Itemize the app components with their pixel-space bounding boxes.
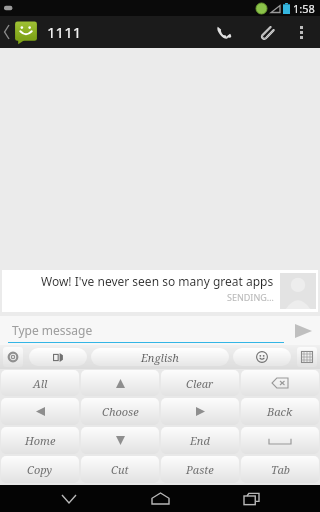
button[interactable]: Home: [134, 485, 186, 512]
button[interactable]: Type message: [8, 318, 284, 343]
button[interactable]: Attach: [246, 16, 286, 48]
staticText: End: [190, 433, 210, 448]
button[interactable]: Paste: [161, 456, 239, 483]
button[interactable]: Emoji: [233, 348, 291, 366]
button[interactable]: Up: [81, 370, 159, 396]
staticText: Back: [267, 404, 293, 419]
button[interactable]: Delete: [241, 370, 319, 396]
button[interactable]: Cut: [81, 456, 159, 483]
button[interactable]: Tab: [241, 456, 319, 483]
button[interactable]: Left: [1, 398, 79, 425]
staticText: Type message: [12, 322, 93, 338]
button[interactable]: 1111: [0, 16, 82, 48]
staticText: All: [33, 376, 48, 391]
staticText: Choose: [102, 404, 139, 419]
button[interactable]: Recent apps: [225, 485, 277, 512]
staticText: Home: [25, 433, 56, 448]
button[interactable]: Send: [286, 316, 320, 345]
button[interactable]: Call: [202, 16, 246, 48]
staticText: Paste: [186, 462, 214, 477]
button[interactable]: Settings: [3, 347, 23, 367]
button[interactable]: Home: [1, 427, 79, 454]
button[interactable]: Keyboard layout: [297, 347, 317, 367]
staticText: 1:58: [293, 1, 315, 16]
staticText: Wow! I've never seen so many great apps: [41, 273, 274, 289]
button[interactable]: Hide keyboard: [43, 485, 95, 512]
button[interactable]: Back: [241, 398, 319, 425]
button[interactable]: English: [91, 348, 229, 366]
staticText: Copy: [27, 462, 53, 477]
button[interactable]: Wow! I've never seen so many great apps: [2, 270, 318, 312]
button[interactable]: Clear: [161, 370, 239, 396]
staticText: SENDING…: [227, 291, 274, 303]
staticText: Clear: [186, 376, 214, 391]
button[interactable]: Down: [81, 427, 159, 454]
staticText: Tab: [271, 462, 290, 477]
button[interactable]: All: [1, 370, 79, 396]
button[interactable]: Space: [241, 427, 319, 454]
button[interactable]: Voice input: [29, 348, 87, 366]
staticText: Cut: [111, 462, 129, 477]
staticText: English: [141, 350, 179, 365]
button[interactable]: More options: [286, 16, 316, 48]
button[interactable]: Copy: [1, 456, 79, 483]
staticText: 1111: [47, 22, 82, 42]
button[interactable]: Right: [161, 398, 239, 425]
button[interactable]: Choose: [81, 398, 159, 425]
button[interactable]: End: [161, 427, 239, 454]
